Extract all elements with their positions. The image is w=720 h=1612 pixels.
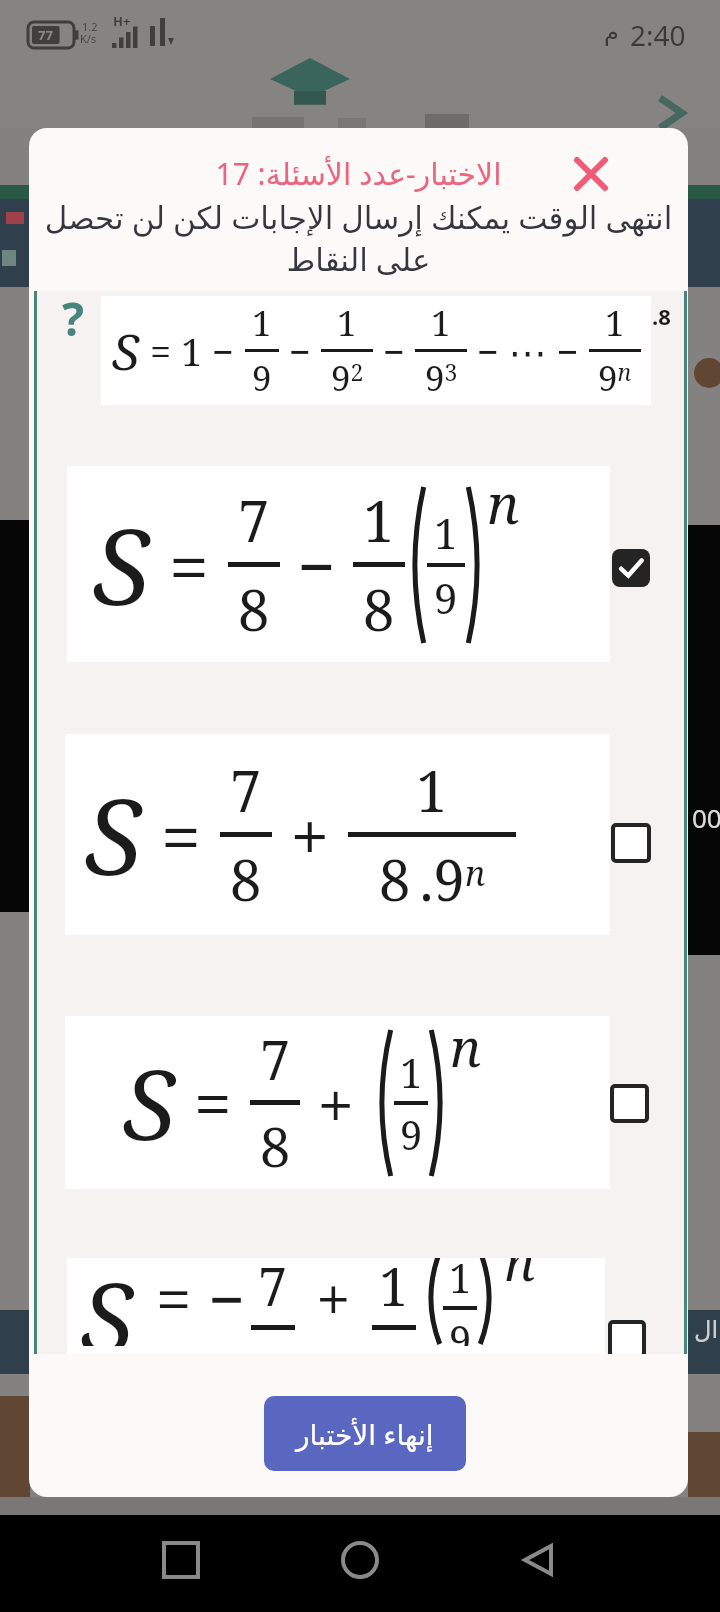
- staticText: 2:40: [630, 16, 686, 54]
- staticText: ال: [694, 1316, 719, 1344]
- staticText: 9n: [598, 354, 632, 402]
- staticText: 77: [38, 26, 53, 44]
- staticText: +: [272, 787, 348, 882]
- button[interactable]: [164, 1543, 198, 1577]
- button[interactable]: S: [65, 1016, 610, 1189]
- staticText: K/s: [80, 31, 97, 46]
- staticText: م: [604, 18, 619, 46]
- staticText: 7: [230, 752, 262, 828]
- button[interactable]: [613, 825, 649, 861]
- staticText: 9: [449, 1312, 472, 1346]
- staticText: 92: [331, 354, 364, 402]
- staticText: .8: [652, 301, 671, 331]
- staticText: 7: [258, 1258, 288, 1321]
- staticText: =: [150, 516, 228, 614]
- staticText: 7: [238, 482, 270, 558]
- staticText: n: [504, 1258, 536, 1296]
- staticText: S: [85, 764, 142, 906]
- staticText: +: [300, 1258, 367, 1340]
- staticText: ?: [62, 291, 84, 350]
- staticText: 8: [230, 841, 262, 917]
- staticText: 8: [238, 571, 270, 647]
- staticText: 93: [425, 354, 458, 402]
- staticText: S: [81, 1258, 134, 1346]
- staticText: 7: [260, 1022, 291, 1096]
- staticText: 1: [449, 1258, 472, 1304]
- staticText: n: [487, 466, 520, 540]
- staticText: −: [373, 325, 415, 377]
- staticText: −: [279, 325, 321, 377]
- button[interactable]: [612, 549, 650, 587]
- staticText: − ⋯ −: [467, 325, 589, 377]
- staticText: 8: [363, 571, 395, 647]
- staticText: −: [280, 520, 353, 610]
- staticText: 1: [363, 482, 395, 558]
- button[interactable]: S: [67, 466, 610, 662]
- staticText: 1.2: [82, 19, 98, 34]
- button[interactable]: إنهاء الأختبار: [264, 1396, 466, 1471]
- staticText: +: [300, 1058, 372, 1148]
- staticText: n: [450, 1011, 482, 1082]
- staticText: 8: [260, 1109, 291, 1183]
- staticText: =: [142, 786, 220, 884]
- staticText: 9: [434, 569, 458, 626]
- staticText: H+: [113, 12, 131, 30]
- button[interactable]: S: [67, 1258, 605, 1354]
- staticText: 1: [605, 299, 625, 347]
- staticText: = 1 −: [140, 325, 245, 377]
- staticText: 1: [416, 752, 448, 828]
- staticText: S: [93, 494, 150, 636]
- staticText: 1: [337, 299, 357, 347]
- staticText: =: [176, 1056, 250, 1149]
- button[interactable]: [522, 1543, 554, 1577]
- staticText: 9: [252, 354, 272, 402]
- button[interactable]: S: [65, 734, 610, 935]
- staticText: 1: [379, 1258, 409, 1321]
- staticText: انتهى الوقت يمكنك إرسال الإجابات لكن لن …: [29, 196, 688, 280]
- staticText: إنهاء الأختبار: [296, 1415, 434, 1453]
- staticText: 1: [252, 299, 272, 347]
- staticText: S: [112, 317, 140, 385]
- staticText: S: [123, 1037, 176, 1168]
- staticText: 1: [431, 299, 451, 347]
- button[interactable]: [343, 1543, 377, 1577]
- staticText: = −: [139, 1258, 246, 1342]
- staticText: الاختبار-عدد الأسئلة: 17: [29, 153, 688, 194]
- staticText: 1: [400, 1045, 423, 1099]
- button[interactable]: [612, 1086, 647, 1121]
- staticText: 9: [400, 1107, 423, 1161]
- button[interactable]: [575, 158, 607, 190]
- staticText: 00: [692, 800, 720, 835]
- staticText: 1: [434, 504, 458, 561]
- button[interactable]: [610, 1322, 644, 1354]
- staticText: 8 .9n: [379, 841, 486, 917]
